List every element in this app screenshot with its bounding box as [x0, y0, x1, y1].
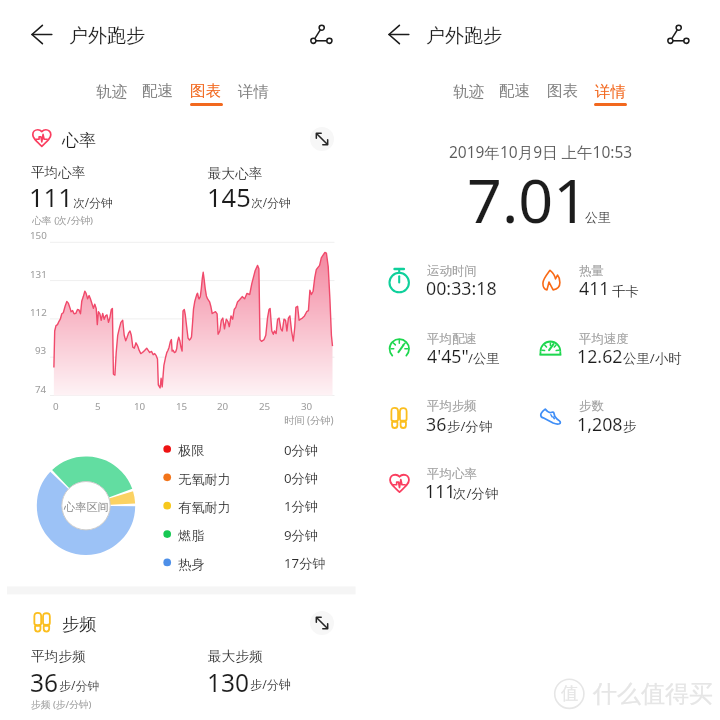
staticText: 25	[259, 400, 271, 413]
staticText: 无氧耐力	[178, 471, 231, 488]
staticText: 0分钟	[284, 469, 319, 487]
staticText: 配速	[499, 81, 530, 101]
button[interactable]: 详情	[230, 76, 276, 102]
staticText: 户外跑步	[69, 24, 145, 48]
staticText: 心率区间	[64, 500, 109, 514]
staticText: 运动时间	[427, 263, 477, 279]
button[interactable]: 配速	[135, 76, 181, 102]
staticText: 步	[623, 418, 637, 435]
button[interactable]: Expand cadence chart	[310, 611, 334, 635]
button[interactable]: 轨迹	[88, 76, 134, 102]
staticText: 30	[301, 400, 313, 413]
staticText: 00:33:18	[426, 276, 497, 300]
staticText: 配速	[142, 81, 173, 101]
staticText: 130	[207, 666, 250, 699]
staticText: 详情	[238, 82, 269, 102]
staticText: 户外跑步	[426, 24, 502, 48]
staticText: 15	[176, 400, 188, 413]
staticText: 详情	[595, 82, 626, 102]
button[interactable]: 图表	[540, 76, 586, 102]
staticText: 步/分钟	[447, 417, 493, 435]
staticText: 心率 (次/分钟)	[32, 214, 94, 227]
staticText: 平均配速	[427, 331, 477, 347]
staticText: 步/分钟	[59, 677, 100, 693]
button[interactable]: 轨迹	[445, 76, 491, 102]
staticText: 步数	[579, 398, 604, 414]
button[interactable]: 配速	[492, 76, 538, 102]
staticText: 时间 (分钟)	[284, 413, 334, 427]
staticText: 145	[207, 180, 251, 215]
staticText: 图表	[547, 81, 578, 101]
staticText: 17分钟	[284, 554, 326, 572]
staticText: 131	[30, 268, 47, 281]
staticText: 公里/小时	[623, 349, 682, 367]
staticText: 平均心率	[427, 466, 477, 482]
staticText: 12.62	[577, 344, 623, 368]
staticText: 有氧耐力	[178, 499, 231, 516]
button[interactable]: Share	[306, 19, 338, 51]
staticText: 公里	[585, 210, 611, 226]
staticText: 36	[30, 666, 59, 699]
staticText: 千卡	[612, 283, 639, 300]
staticText: 次/分钟	[73, 194, 113, 210]
staticText: 次/分钟	[453, 484, 499, 502]
staticText: /公里	[468, 349, 500, 367]
staticText: 平均心率	[31, 164, 86, 181]
staticText: 图表	[190, 81, 221, 101]
staticText: 150	[30, 229, 47, 242]
staticText: 20	[217, 400, 229, 413]
staticText: 最大心率	[208, 165, 263, 182]
button[interactable]: Expand heart rate chart	[310, 127, 334, 151]
button[interactable]: 图表	[183, 76, 229, 102]
staticText: 极限	[178, 442, 205, 459]
staticText: 9分钟	[284, 526, 319, 544]
button[interactable]: Back	[24, 18, 60, 52]
staticText: 0	[53, 400, 59, 413]
staticText: 平均步频	[427, 398, 477, 414]
staticText: 93	[35, 344, 47, 357]
staticText: 热身	[178, 556, 205, 573]
button[interactable]: Back	[381, 18, 417, 52]
staticText: 2019年10月9日 上午10:53	[449, 141, 633, 162]
staticText: 10	[134, 400, 146, 413]
staticText: 轨迹	[453, 82, 484, 102]
staticText: 步频	[62, 613, 97, 635]
staticText: 步频 (步/分钟)	[31, 698, 92, 711]
staticText: 平均步频	[31, 648, 86, 665]
staticText: 什么值得买	[593, 679, 713, 709]
staticText: 最大步频	[208, 648, 263, 665]
staticText: 36	[426, 412, 447, 436]
staticText: 1分钟	[284, 497, 319, 515]
staticText: 7.01	[467, 158, 589, 241]
staticText: 值	[561, 682, 579, 704]
staticText: 111	[425, 479, 456, 503]
staticText: 111	[29, 180, 73, 215]
staticText: 平均速度	[579, 331, 629, 347]
staticText: 112	[30, 306, 47, 319]
staticText: 74	[35, 383, 47, 396]
staticText: 411	[579, 276, 610, 300]
staticText: 热量	[579, 263, 604, 279]
staticText: 轨迹	[96, 82, 127, 102]
staticText: 次/分钟	[251, 194, 291, 210]
staticText: 0分钟	[284, 441, 319, 459]
staticText: 心率	[62, 130, 96, 151]
staticText: 1,208	[577, 412, 623, 436]
button[interactable]: 详情	[587, 76, 633, 102]
staticText: 燃脂	[178, 527, 205, 544]
staticText: 4'45"	[427, 344, 469, 368]
staticText: 5	[95, 400, 101, 413]
staticText: 步/分钟	[250, 676, 292, 693]
button[interactable]: Share	[663, 19, 695, 51]
